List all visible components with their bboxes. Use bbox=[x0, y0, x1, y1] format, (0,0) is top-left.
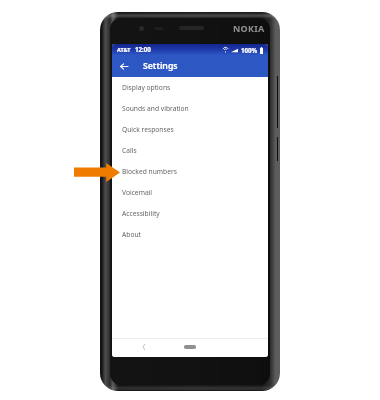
staticText: Settings bbox=[143, 60, 178, 72]
button[interactable]: Quick responses bbox=[112, 119, 268, 140]
staticText: Display options bbox=[122, 83, 171, 92]
staticText: Calls bbox=[122, 146, 137, 155]
button[interactable]: Blocked numbers bbox=[112, 161, 268, 182]
staticText: Voicemail bbox=[122, 188, 153, 197]
button[interactable]: Back bbox=[138, 341, 149, 352]
staticText: About bbox=[122, 230, 141, 239]
staticText: 12:00 bbox=[135, 45, 151, 53]
staticText: Accessibility bbox=[122, 209, 160, 218]
staticText: AT&T bbox=[117, 46, 131, 53]
button[interactable]: Accessibility bbox=[112, 203, 268, 224]
button[interactable]: Voicemail bbox=[112, 182, 268, 203]
button[interactable]: Calls bbox=[112, 140, 268, 161]
staticText: NOKIA bbox=[233, 22, 265, 34]
staticText: Sounds and vibration bbox=[122, 104, 189, 113]
button[interactable]: Display options bbox=[112, 77, 268, 98]
button[interactable]: About bbox=[112, 224, 268, 245]
button[interactable]: Home bbox=[184, 345, 196, 349]
button[interactable]: Back bbox=[116, 59, 131, 74]
staticText: Blocked numbers bbox=[122, 167, 177, 176]
button[interactable]: Sounds and vibration bbox=[112, 98, 268, 119]
staticText: Quick responses bbox=[122, 125, 174, 134]
staticText: 100% bbox=[241, 46, 258, 54]
